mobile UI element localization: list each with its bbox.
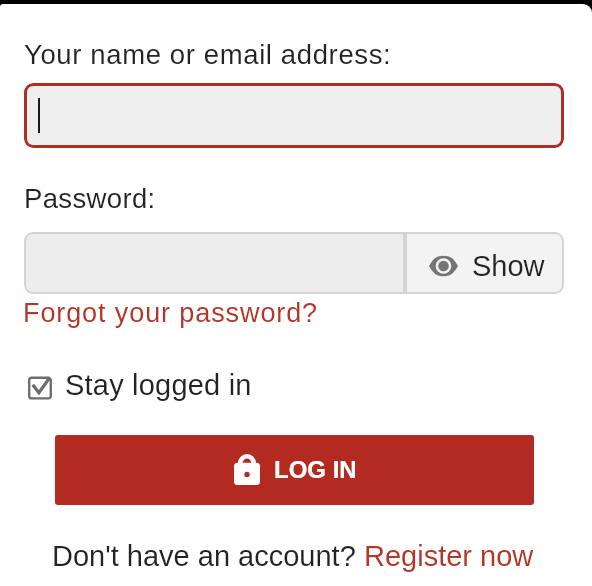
staticText: Forgot your password?	[23, 298, 319, 328]
staticText: Password:	[24, 183, 156, 214]
button[interactable]	[24, 368, 254, 404]
staticText: Your name or email address:	[24, 39, 392, 70]
staticText: LOG IN	[274, 456, 357, 483]
staticText: Don't have an account?	[52, 540, 364, 572]
button[interactable]	[24, 232, 405, 294]
button[interactable]: LOG IN	[55, 435, 534, 505]
staticText: Show	[472, 250, 545, 282]
button[interactable]	[24, 83, 564, 148]
button[interactable]: Forgot your password?	[23, 298, 319, 328]
button[interactable]: Show	[405, 232, 564, 294]
staticText: Stay logged in	[65, 369, 252, 401]
button[interactable]: Register now	[364, 540, 534, 572]
staticText: Register now	[364, 540, 534, 572]
